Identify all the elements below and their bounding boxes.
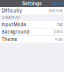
button[interactable]: Difficulty [0, 7, 64, 14]
staticText: Normal [48, 8, 62, 13]
staticText: Difficulty [1, 8, 22, 13]
staticText: Theme [1, 37, 17, 42]
staticText: GAMEPLAY [1, 16, 19, 20]
staticText: Done [52, 1, 63, 6]
button[interactable]: Input Mode [0, 21, 64, 28]
staticText: Input Mode [1, 22, 26, 27]
staticText: Tap [56, 22, 62, 27]
staticText: Auto [54, 37, 62, 42]
staticText: Background [1, 29, 29, 35]
staticText: Dark [53, 29, 62, 34]
staticText: Settings [22, 1, 42, 6]
button[interactable]: Theme [0, 36, 64, 43]
button[interactable]: Done [51, 1, 64, 6]
button[interactable]: Background [0, 28, 64, 35]
